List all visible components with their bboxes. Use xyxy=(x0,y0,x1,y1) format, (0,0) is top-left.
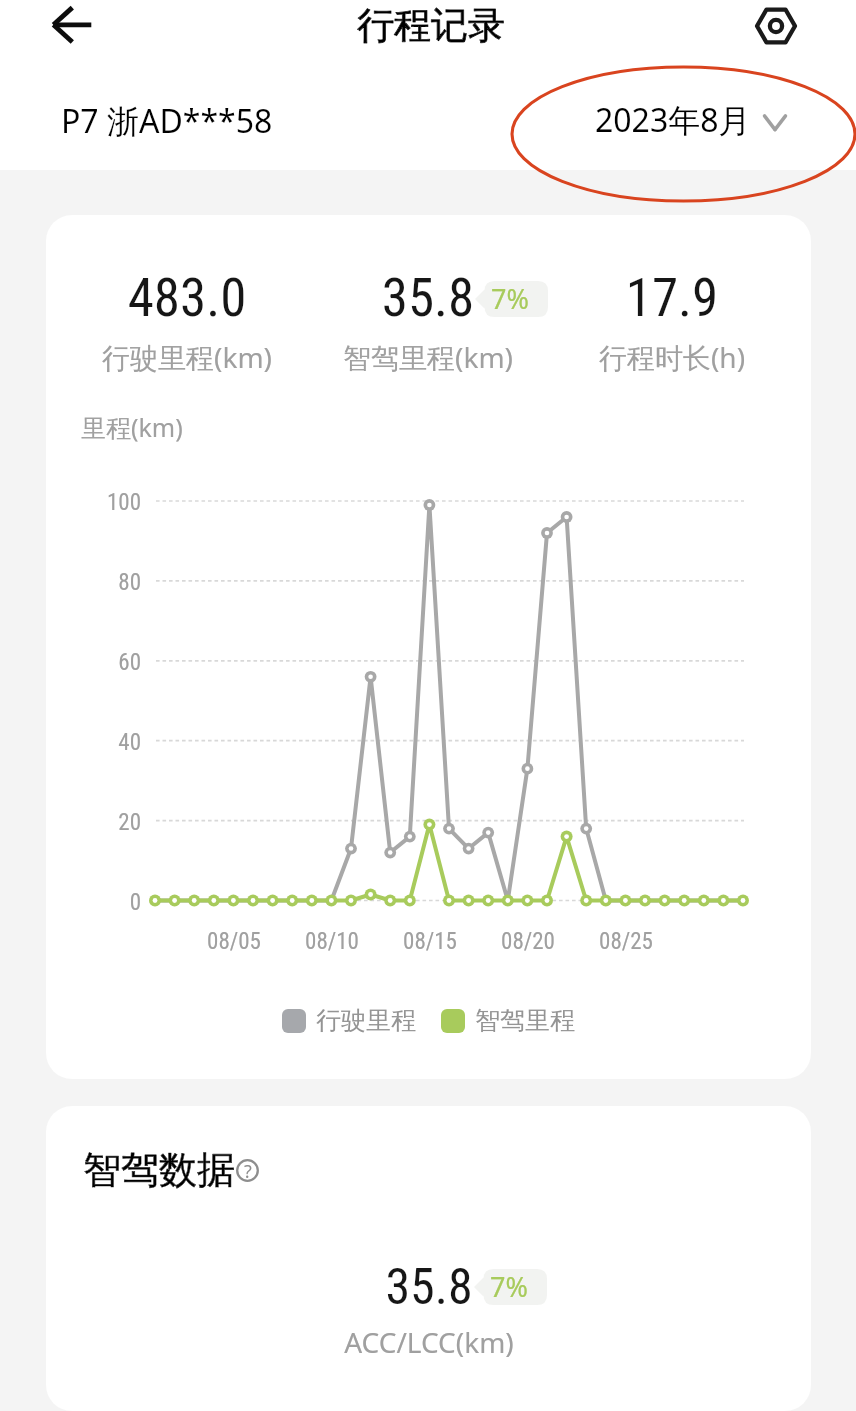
staticText: 7% xyxy=(491,280,529,316)
staticText: 100 xyxy=(41,489,141,516)
staticText: 08/25 xyxy=(566,928,686,955)
staticText: 行驶里程 xyxy=(316,1005,416,1036)
staticText: 0 xyxy=(41,889,141,916)
staticText: 行程时长(h) xyxy=(472,338,856,376)
staticText: 智驾里程(km) xyxy=(228,338,628,376)
button[interactable]: 2023年8月 xyxy=(595,98,787,142)
staticText: 行驶里程(km) xyxy=(0,338,387,376)
staticText: 智驾数据 xyxy=(83,1146,235,1194)
staticText: 80 xyxy=(41,569,141,596)
staticText: 483.0 xyxy=(0,267,387,329)
staticText: 08/05 xyxy=(174,928,294,955)
staticText: 17.9 xyxy=(472,267,856,329)
staticText: 35.8 xyxy=(228,267,628,329)
button[interactable]: Back xyxy=(36,0,108,72)
staticText: 智驾数据 xyxy=(83,1146,235,1194)
staticText: 08/15 xyxy=(370,928,490,955)
button[interactable]: Help xyxy=(236,1159,259,1182)
staticText: 行程记录 xyxy=(357,2,505,49)
button[interactable]: Settings xyxy=(739,0,812,62)
staticText: 08/10 xyxy=(272,928,392,955)
staticText: 60 xyxy=(41,649,141,676)
staticText: 智驾里程 xyxy=(475,1005,575,1036)
staticText: 2023年8月 xyxy=(595,98,751,142)
staticText: 里程(km) xyxy=(81,410,183,444)
staticText: ACC/LCC(km) xyxy=(229,1323,629,1361)
staticText: P7 浙AD***58 xyxy=(61,99,273,143)
staticText: 35.8 xyxy=(229,1258,629,1317)
staticText: 20 xyxy=(41,809,141,836)
staticText: 08/20 xyxy=(468,928,588,955)
staticText: ? xyxy=(244,1159,252,1182)
staticText: 7% xyxy=(490,1268,528,1304)
staticText: 行程记录 xyxy=(357,2,505,49)
staticText: 40 xyxy=(41,729,141,756)
